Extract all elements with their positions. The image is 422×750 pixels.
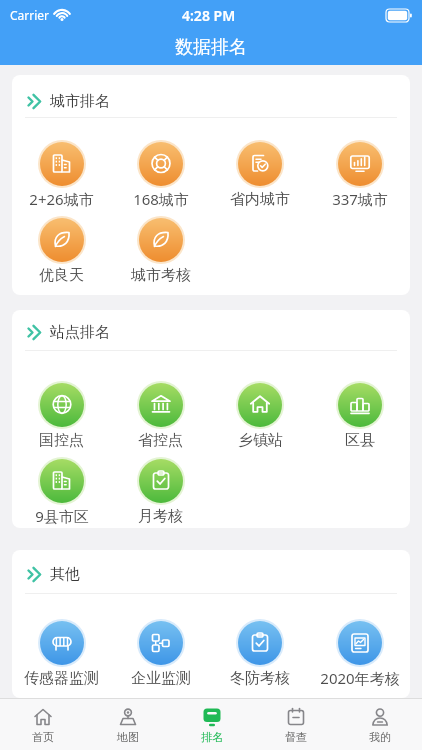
button[interactable]: 省控点	[111, 381, 210, 451]
staticText: 月考核	[138, 507, 183, 526]
staticText: 4:28 PM	[182, 6, 236, 25]
staticText: 2020年考核	[320, 668, 400, 688]
button[interactable]: 月考核	[111, 457, 210, 527]
staticText: Carrier	[10, 7, 50, 23]
staticText: 城市考核	[131, 266, 191, 285]
button[interactable]: 地图	[85, 699, 170, 750]
button[interactable]: 其他	[27, 555, 410, 593]
staticText: 国控点	[39, 431, 84, 450]
staticText: 排名	[201, 730, 223, 744]
button[interactable]: 2020年考核	[310, 619, 410, 689]
staticText: 区县	[345, 431, 375, 450]
staticText: 企业监测	[131, 669, 191, 688]
staticText: 督查	[285, 730, 307, 744]
button[interactable]: 337城市	[310, 140, 410, 210]
button[interactable]: 我的	[338, 699, 422, 750]
staticText: 城市排名	[50, 92, 110, 111]
button[interactable]: 企业监测	[111, 619, 210, 689]
button[interactable]: 冬防考核	[210, 619, 310, 689]
staticText: 省控点	[138, 431, 183, 450]
button[interactable]: 乡镇站	[210, 381, 310, 451]
staticText: 地图	[117, 730, 139, 744]
button[interactable]: 排名	[170, 699, 254, 750]
button[interactable]: 168城市	[111, 140, 210, 210]
staticText: 数据排名	[175, 36, 247, 59]
button[interactable]: 站点排名	[27, 314, 410, 350]
button[interactable]: 省内城市	[210, 140, 310, 210]
staticText: 2+26城市	[29, 189, 94, 209]
button[interactable]: 督查	[254, 699, 338, 750]
staticText: 优良天	[39, 266, 84, 285]
staticText: 其他	[50, 565, 80, 584]
staticText: 传感器监测	[24, 669, 99, 688]
button[interactable]: 优良天	[12, 216, 111, 286]
button[interactable]: 9县市区	[12, 457, 111, 527]
button[interactable]: 首页	[0, 699, 85, 750]
staticText: 337城市	[332, 189, 388, 209]
button[interactable]: 城市排名	[27, 85, 410, 117]
staticText: 乡镇站	[238, 431, 283, 450]
staticText: 冬防考核	[230, 669, 290, 688]
staticText: 站点排名	[50, 323, 110, 342]
button[interactable]: 2+26城市	[12, 140, 111, 210]
staticText: 我的	[369, 730, 391, 744]
staticText: 省内城市	[230, 190, 290, 209]
button[interactable]: 区县	[310, 381, 410, 451]
button[interactable]: 城市考核	[111, 216, 210, 286]
staticText: 9县市区	[35, 506, 89, 526]
button[interactable]: 国控点	[12, 381, 111, 451]
button[interactable]: 传感器监测	[12, 619, 111, 689]
staticText: 首页	[32, 730, 54, 744]
staticText: 168城市	[133, 189, 189, 209]
